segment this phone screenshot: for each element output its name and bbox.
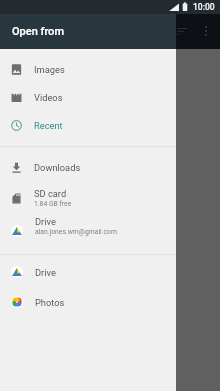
button[interactable]: Drive [0,260,176,288]
staticText: Recent [34,120,63,131]
staticText: Downloads [34,162,81,173]
staticText: Open from [12,25,64,38]
staticText: alan.jones.wm@gmail.com [35,228,117,236]
button[interactable]: Photos [0,288,176,316]
staticText: Drive [35,216,56,227]
button[interactable]: Drive [0,211,176,241]
button[interactable]: SD card [0,181,176,211]
staticText: Photos [35,297,65,308]
staticText: Drive [35,267,56,278]
button[interactable]: Videos [0,83,176,111]
staticText: 10:00 [193,2,215,12]
staticText: Videos [34,92,63,103]
button[interactable]: Images [0,55,176,83]
staticText: SD card [34,188,67,199]
staticText: 1.84 GB free [34,200,72,208]
button[interactable]: Recent [0,111,176,139]
button[interactable]: Downloads [0,153,176,181]
staticText: Images [34,64,65,75]
